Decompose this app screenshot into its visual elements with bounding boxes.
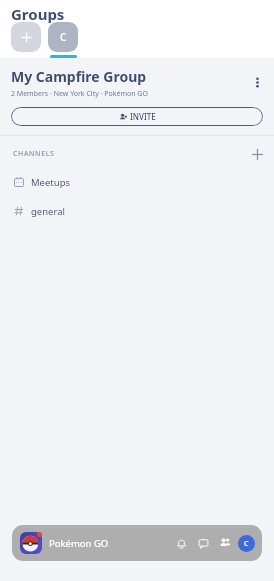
button[interactable]: Members bbox=[214, 532, 236, 554]
button[interactable]: More options bbox=[244, 67, 270, 97]
staticText: My Campfire Group bbox=[11, 67, 147, 86]
button[interactable]: Pokémon GO bbox=[19, 531, 43, 555]
staticText: general bbox=[31, 205, 65, 218]
button[interactable]: INVITE bbox=[11, 107, 263, 126]
button[interactable]: C bbox=[238, 535, 255, 552]
button[interactable]: C bbox=[48, 22, 78, 52]
staticText: Meetups bbox=[31, 176, 71, 189]
staticText: Pokémon GO bbox=[49, 537, 109, 550]
staticText: INVITE bbox=[130, 111, 156, 122]
button[interactable]: Chat bbox=[192, 532, 214, 554]
staticText: C bbox=[60, 30, 67, 44]
staticText: C bbox=[244, 539, 249, 549]
button[interactable]: Meetups bbox=[0, 171, 274, 193]
button[interactable]: Add channel bbox=[248, 145, 266, 163]
staticText: CHANNELS bbox=[13, 149, 55, 159]
button[interactable]: Create group bbox=[11, 22, 41, 52]
staticText: 2 Members · New York City · Pokémon GO bbox=[11, 89, 148, 99]
staticText: Groups bbox=[11, 4, 65, 24]
button[interactable]: Notifications bbox=[170, 532, 192, 554]
button[interactable]: general bbox=[0, 200, 274, 222]
